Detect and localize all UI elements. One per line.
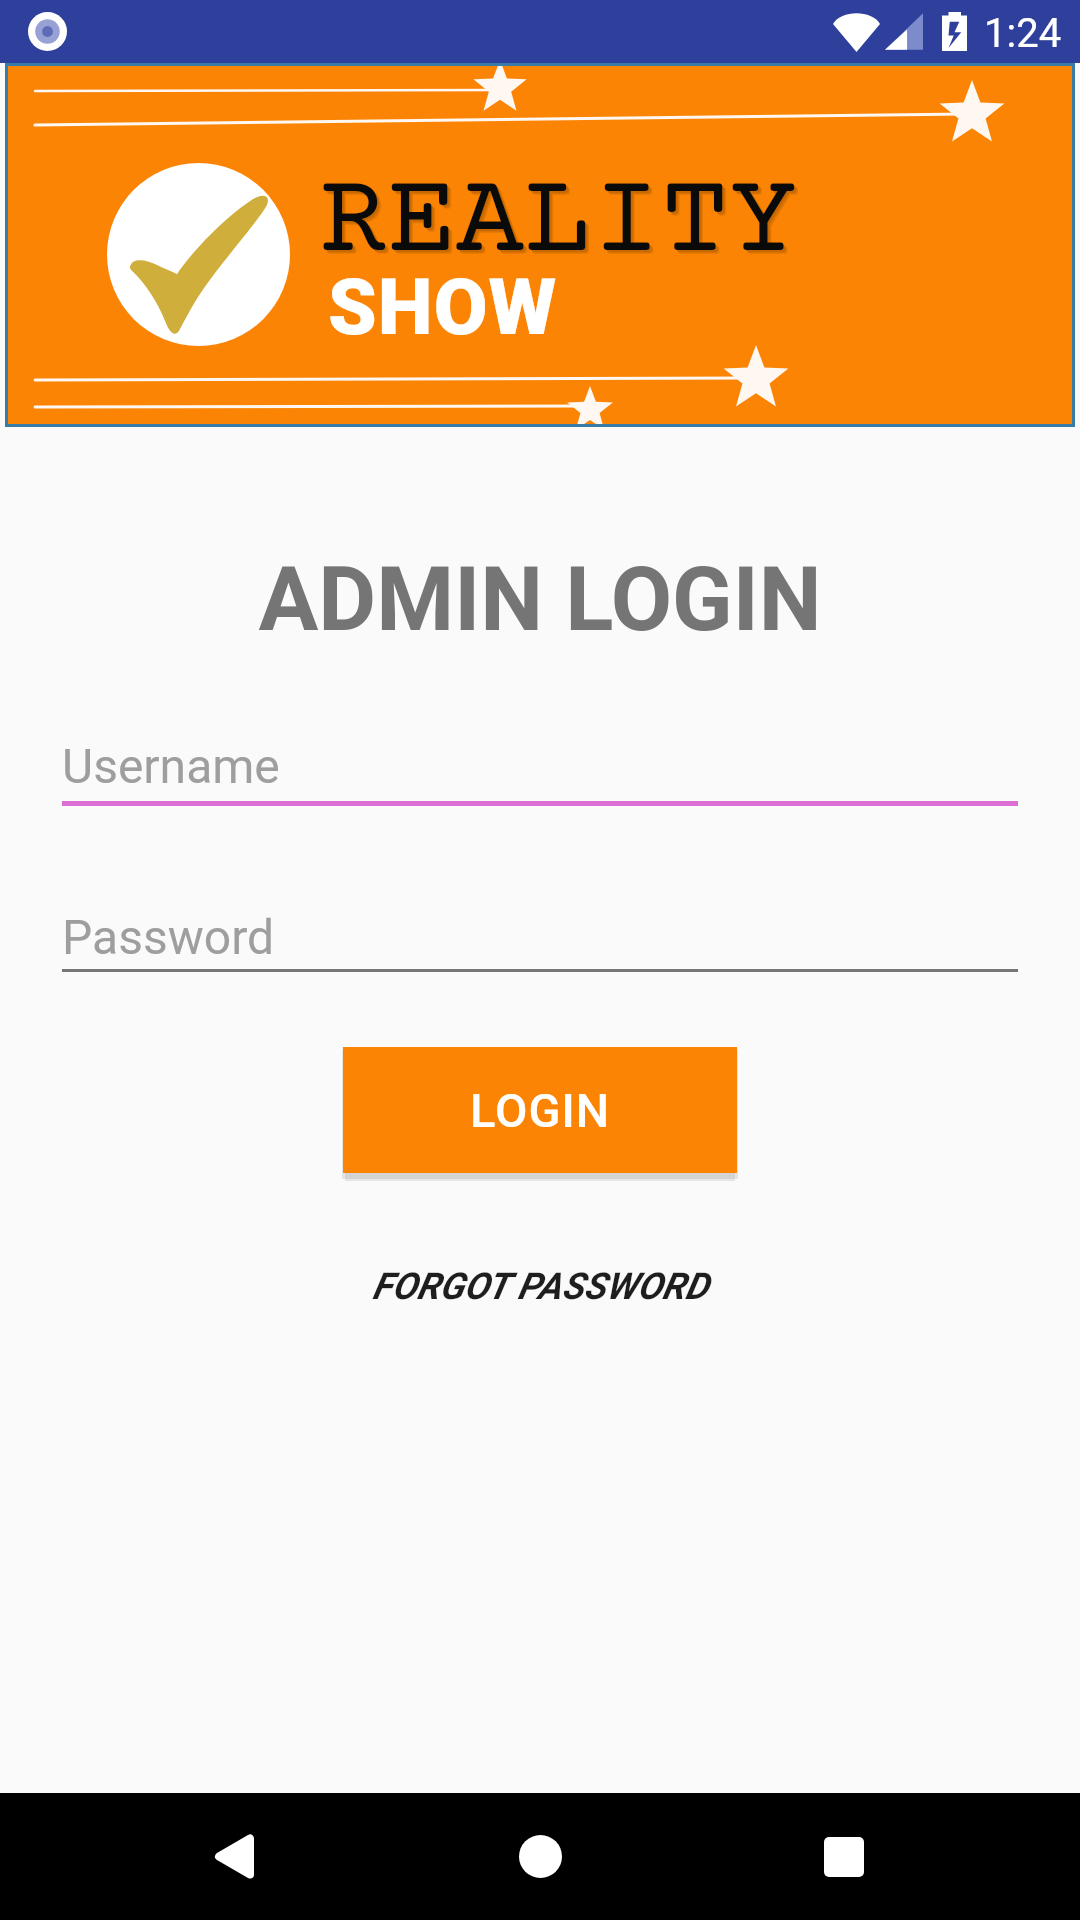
staticText: LOGIN (470, 1083, 611, 1138)
staticText: REALITY (322, 164, 801, 292)
staticText: REALITY (321, 163, 800, 291)
staticText: REALITY (323, 165, 802, 293)
button[interactable]: FORGOT PASSWORD (346, 1243, 734, 1330)
staticText: REALITY (319, 161, 798, 289)
button[interactable]: Back (170, 1793, 302, 1920)
staticText: FORGOT PASSWORD (372, 1265, 708, 1308)
staticText: SHOW (328, 262, 558, 353)
staticText: Password (62, 909, 275, 965)
staticText: Username (62, 738, 280, 794)
staticText: ADMIN LOGIN (0, 547, 1080, 651)
button[interactable]: Username (62, 738, 1018, 806)
button[interactable]: Home (474, 1793, 606, 1920)
button[interactable]: Password (62, 909, 1018, 972)
button[interactable]: Recent apps (778, 1793, 910, 1920)
button[interactable]: LOGIN (343, 1047, 737, 1173)
staticText: 1:24 (984, 10, 1062, 57)
